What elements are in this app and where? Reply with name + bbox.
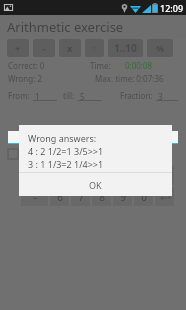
staticText: 8 (99, 190, 105, 204)
button[interactable]: 8 (92, 187, 111, 206)
staticText: 1..10 (114, 41, 137, 55)
button[interactable]: 0 (134, 187, 153, 206)
staticText: x (67, 42, 73, 54)
button[interactable] (8, 131, 178, 143)
staticText: + (15, 42, 21, 54)
staticText: Tab (27, 170, 42, 182)
staticText: 3 (158, 91, 163, 100)
staticText: - (43, 42, 46, 54)
staticText: % (156, 42, 165, 54)
staticText: OK (89, 179, 102, 191)
staticText: 6 (57, 190, 63, 204)
staticText: 9 (120, 190, 126, 204)
button[interactable]: % (147, 39, 173, 57)
staticText: Max. time: 0:07:36 (95, 73, 164, 84)
staticText: Fraction: (120, 90, 153, 101)
staticText: 0 (141, 190, 147, 204)
staticText: Time: (90, 60, 111, 71)
staticText: 5 (141, 169, 147, 183)
staticText: 3 (99, 169, 105, 183)
staticText: 2 (78, 169, 84, 183)
staticText: Wrong answers: (28, 132, 97, 144)
button[interactable]: 4 (113, 166, 132, 185)
staticText: 1 (35, 91, 40, 100)
staticText: Correct: 0 (8, 60, 45, 71)
staticText: Wrong: 2 (8, 73, 43, 84)
button[interactable]: 6 (50, 187, 69, 206)
button[interactable]: - (21, 187, 48, 206)
button[interactable]: Enter (155, 187, 174, 206)
staticText: 3 : 1 1/3=2 1/4>>1 (28, 158, 104, 170)
staticText: 5 (80, 91, 85, 100)
button[interactable]: 1 (50, 166, 69, 185)
button[interactable]: 1 (33, 91, 57, 100)
button[interactable]: 7 (71, 187, 90, 206)
staticText: 2 fractions (24, 148, 64, 159)
button[interactable]: 3 (156, 91, 178, 100)
button[interactable]: x (59, 39, 81, 57)
staticText: 4 : 2 1/2=1 3/5>>1 (28, 145, 104, 157)
button[interactable]: 5 (78, 91, 102, 100)
button[interactable]: 2 (71, 166, 90, 185)
staticText: - (33, 190, 37, 204)
button[interactable]: OK (19, 173, 172, 196)
staticText: 12:09 (160, 2, 184, 14)
button[interactable]: 5 (134, 166, 153, 185)
button[interactable]: 9 (113, 187, 132, 206)
staticText: till: (63, 90, 75, 101)
button[interactable]: 1..10 (108, 39, 143, 57)
staticText: Arithmetic exercise (7, 18, 124, 36)
button[interactable]: Backspace (155, 166, 174, 185)
staticText: 4 (120, 169, 126, 183)
staticText: 1 (57, 169, 63, 183)
staticText: From: (8, 90, 30, 101)
button[interactable]: Tab (21, 166, 48, 185)
staticText: 7 (78, 190, 84, 204)
staticText: : (93, 42, 96, 54)
staticText: 0:00:08 (125, 60, 153, 71)
button[interactable]: 2 fractions (8, 148, 64, 159)
button[interactable]: 3 (92, 166, 111, 185)
